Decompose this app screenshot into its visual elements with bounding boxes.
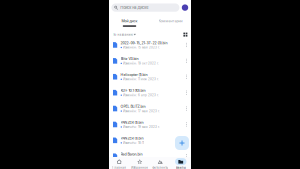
staticText: Изменён: 17 мая 2023 г. [123,109,160,113]
staticText: Избранное [131,166,148,169]
button[interactable]: Фотоленты [150,157,170,169]
button[interactable]: KDF 10.1 (10).bin [109,85,191,101]
button[interactable]: Helicopter (1).bin [109,69,191,85]
button[interactable]: PANZER (1).bin [109,116,191,132]
staticText: Мой диск [121,19,137,23]
button[interactable]: Добавить [175,136,189,150]
staticText: Изменён: 18:11 [123,141,144,145]
staticText: OPEL BLITZ.bin [121,104,146,109]
staticText: 2022-09-15_21-37-22 (3).bin [121,41,168,45]
button[interactable]: Файлы [170,157,191,169]
staticText: Изменён: 6 апр 2023 г. [123,93,159,97]
staticText: PANZER (1).bin [121,136,144,140]
staticText: Изменён: 11 июн 2023 г. [123,77,159,81]
button[interactable]: Blitz V3.bin [109,53,191,69]
button[interactable]: По названию [113,33,136,36]
staticText: Red Baron.bin [121,152,143,156]
button[interactable]: Поиск на Диске [111,3,179,12]
button[interactable]: Главная [109,157,129,169]
button[interactable]: Профиль [182,4,188,11]
staticText: Файлы [176,166,186,169]
button[interactable]: PANZER (1).bin [109,132,191,148]
staticText: KDF 10.1 (10).bin [121,88,146,93]
staticText: Изменён: 15 мая 2023 г. [123,46,160,49]
staticText: Helicopter (1).bin [121,72,148,77]
button[interactable]: Мой диск [109,19,150,27]
staticText: Главная [112,166,126,169]
staticText: Изменён: 19 мая 2023 г. [123,125,160,129]
button[interactable]: Комментарии [150,19,191,27]
staticText: Фотоленты [152,166,168,169]
staticText: PANZER (1).bin [121,120,144,124]
staticText: Blitz V3.bin [121,56,139,61]
staticText: По названию [113,33,133,36]
staticText: Изменён: 9 мая 2023 г. [123,157,159,160]
button[interactable]: OPEL BLITZ.bin [109,101,191,116]
button[interactable]: 2022-09-15_21-37-22 (3).bin [109,37,191,53]
button[interactable]: Вид списка [183,33,187,37]
staticText: Комментарии [158,19,182,23]
button[interactable]: Red Baron.bin [109,148,191,164]
staticText: Изменён: 19 окт 2022 г. [123,62,159,65]
button[interactable]: Избранное [129,157,150,169]
staticText: Поиск на Диске [120,5,148,10]
